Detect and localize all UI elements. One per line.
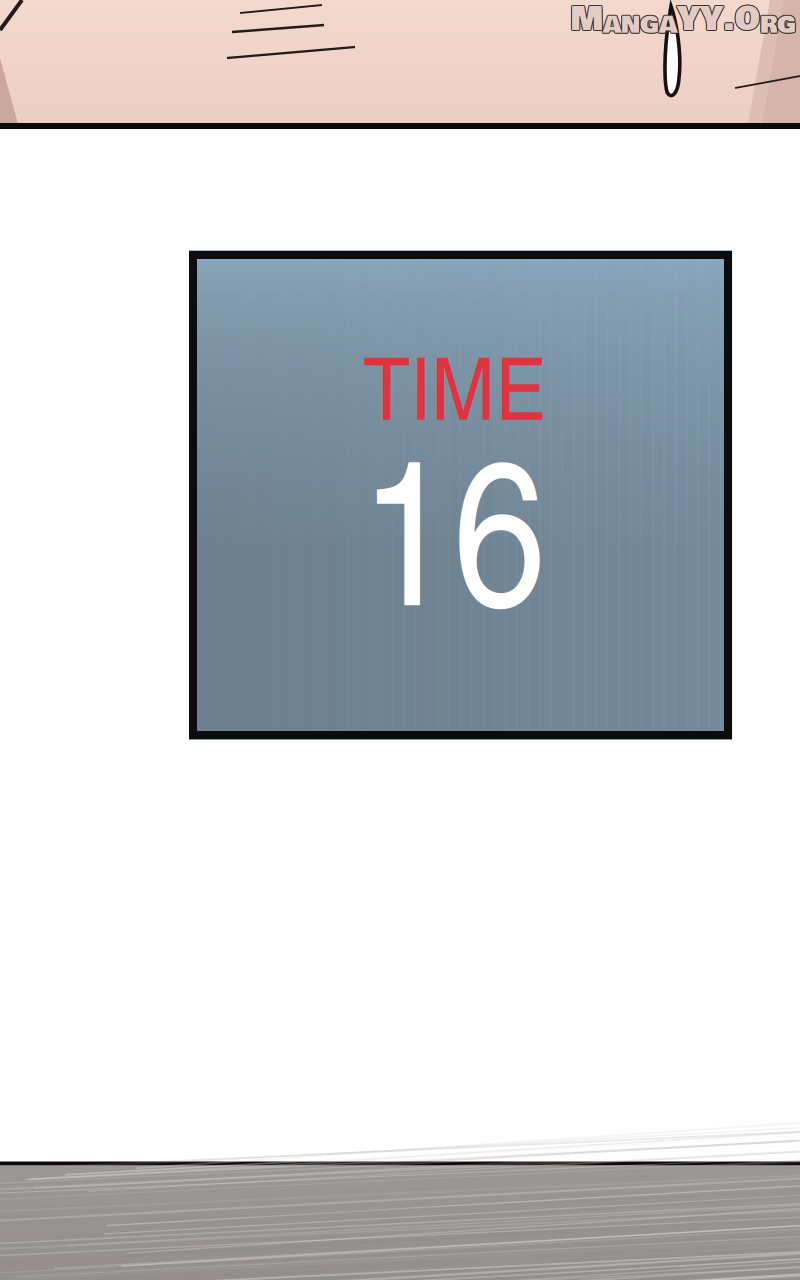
staticText: M (571, 0, 604, 43)
staticText: YY (677, 0, 723, 44)
staticText: YY (676, 0, 722, 44)
staticText: M (569, 0, 602, 42)
staticText: M (569, 0, 602, 43)
staticText: .O (724, 0, 761, 42)
staticText: RG (760, 7, 796, 43)
staticText: M (570, 0, 603, 42)
staticText: ANGA (602, 7, 676, 42)
staticText: M (571, 0, 604, 44)
staticText: TIME (363, 321, 546, 449)
staticText: RG (759, 7, 795, 43)
staticText: ANGA (603, 7, 677, 43)
staticText: M (570, 0, 603, 43)
staticText: ANGA (602, 8, 676, 44)
staticText: .O (723, 0, 760, 44)
staticText: YY (678, 0, 724, 44)
staticText: YY (677, 0, 723, 43)
staticText: .O (722, 0, 759, 43)
staticText: RG (760, 6, 796, 42)
staticText: YY (678, 0, 724, 43)
staticText: .O (723, 0, 760, 43)
staticText: ANGA (604, 8, 678, 44)
staticText: ANGA (603, 6, 677, 42)
staticText: RG (761, 7, 797, 42)
staticText: RG (761, 8, 797, 44)
staticText: ANGA (602, 7, 676, 43)
staticText: YY (677, 0, 723, 42)
staticText: M (570, 0, 603, 44)
staticText: YY (676, 0, 722, 43)
staticText: ANGA (604, 7, 678, 43)
staticText: RG (760, 8, 796, 44)
staticText: .O (723, 0, 760, 42)
staticText: M (569, 0, 602, 44)
staticText: 16 (360, 383, 546, 663)
staticText: ANGA (603, 8, 677, 44)
staticText: RG (759, 7, 795, 42)
staticText: .O (724, 0, 761, 44)
staticText: YY (678, 0, 724, 42)
staticText: M (571, 0, 604, 42)
staticText: .O (722, 0, 759, 44)
staticText: ANGA (604, 7, 678, 42)
staticText: RG (761, 7, 797, 43)
staticText: .O (724, 0, 761, 43)
staticText: .O (722, 0, 759, 42)
staticText: RG (759, 8, 795, 44)
staticText: YY (676, 0, 722, 42)
